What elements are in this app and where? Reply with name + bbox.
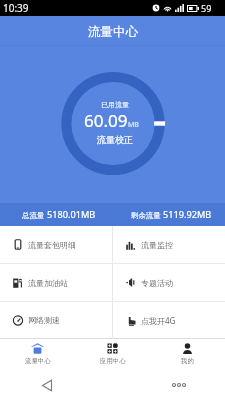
staticText: 总流量	[22, 210, 47, 220]
button[interactable]: 专题活动	[113, 264, 225, 301]
staticText: 5119.92MB	[163, 208, 212, 221]
staticText: 剩余流量	[131, 210, 163, 220]
button[interactable]: 流量加油站	[0, 264, 112, 301]
staticText: 我的	[181, 357, 194, 365]
staticText: 流量中心	[88, 24, 138, 40]
staticText: 流量加油站	[28, 278, 68, 288]
button[interactable]: 点我开4G	[113, 302, 225, 338]
staticText: 专题活动	[141, 278, 173, 288]
staticText: 流量套包明细	[28, 240, 76, 250]
staticText: 59	[201, 2, 212, 14]
button[interactable]: 流量中心	[0, 337, 75, 370]
staticText: 5180.01MB	[47, 208, 96, 221]
button[interactable]: 应用中心	[75, 337, 150, 370]
staticText: 应用中心	[100, 357, 126, 365]
staticText: 流量监控	[141, 240, 173, 250]
staticText: 点我开4G	[141, 315, 176, 326]
button[interactable]: 网络测速	[0, 302, 112, 338]
button[interactable]: Back	[40, 378, 54, 392]
staticText: 流量中心	[25, 357, 51, 365]
button[interactable]: 流量监控	[113, 226, 225, 263]
button[interactable]: 我的	[150, 337, 225, 370]
staticText: MB	[128, 120, 139, 130]
staticText: 网络测速	[28, 315, 60, 325]
staticText: 已用流量	[101, 100, 129, 109]
button[interactable]: Recent apps	[172, 383, 186, 387]
staticText: 流量校正	[97, 134, 133, 145]
staticText: 60.09	[84, 109, 128, 132]
staticText: 10:39	[3, 1, 29, 15]
button[interactable]: 流量套包明细	[0, 226, 112, 263]
